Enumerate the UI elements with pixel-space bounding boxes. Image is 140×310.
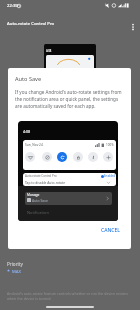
button[interactable]: Auto-rotate Control Pro	[23, 173, 116, 186]
staticText: Auto-rotate Control Pro	[7, 20, 55, 26]
button[interactable]: Quick setting toggle	[73, 152, 83, 162]
staticText: Auto-rotate Control Pro	[25, 174, 57, 178]
button[interactable]: Quick setting toggle	[88, 152, 98, 162]
button[interactable]: More options	[126, 20, 139, 33]
button[interactable]: Quick setting toggle	[25, 152, 35, 162]
staticText: Tap to disable Auto-rotate	[25, 180, 66, 184]
button[interactable]: Quick setting toggle	[42, 152, 52, 162]
staticText: MAX	[12, 269, 21, 275]
staticText: If you change Android's auto-rotate sett…	[15, 89, 126, 109]
staticText: Auto Save	[15, 75, 42, 83]
button[interactable]: Quick setting toggle	[103, 152, 113, 162]
staticText: 100%	[106, 143, 114, 147]
staticText: Sun, Nov 24	[25, 143, 43, 147]
staticText: 22:39	[7, 3, 18, 9]
button[interactable]: Manage	[25, 192, 112, 205]
staticText: Auto Save	[32, 198, 48, 203]
staticText: 4:08	[46, 49, 52, 53]
staticText: CANCEL	[101, 227, 120, 234]
staticText: Enabled	[104, 174, 115, 178]
staticText: Android's auto-rotate feature controls w…	[7, 291, 132, 301]
staticText: Notification	[27, 210, 49, 215]
button[interactable]: CANCEL	[95, 222, 126, 239]
staticText: Priority	[7, 261, 23, 267]
staticText: 4:08	[23, 129, 31, 134]
button[interactable]: Quick setting toggle	[57, 152, 67, 162]
staticText: Manage	[27, 193, 40, 197]
